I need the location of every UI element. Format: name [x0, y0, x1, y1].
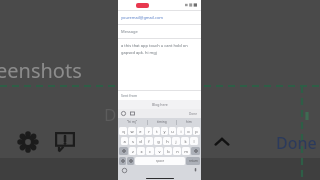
staticText: b [167, 149, 170, 154]
button[interactable]: v [155, 147, 163, 155]
button[interactable]: Numbers [119, 157, 126, 165]
staticText: j [175, 139, 177, 144]
button[interactable]: e [137, 127, 144, 135]
button[interactable]: Done [189, 112, 198, 116]
button[interactable]: m [182, 147, 190, 155]
button[interactable]: More [303, 112, 311, 120]
staticText: u [171, 129, 174, 134]
button[interactable]: Delete [191, 147, 200, 155]
staticText: x [140, 149, 143, 154]
button[interactable]: Message [118, 25, 201, 38]
staticText: n [176, 149, 179, 154]
staticText: y [163, 129, 166, 134]
staticText: Sent from [121, 93, 138, 98]
staticText: h [166, 139, 169, 144]
button[interactable]: h [163, 137, 171, 145]
staticText: Message [121, 29, 138, 34]
staticText: q [122, 129, 125, 134]
staticText: D [104, 103, 117, 126]
staticText: f [148, 139, 150, 144]
staticText: a this that app touch u cant hold on [121, 43, 188, 48]
button[interactable]: f [145, 137, 153, 145]
button[interactable]: g [154, 137, 162, 145]
staticText: w [130, 129, 134, 134]
staticText: k [184, 139, 187, 144]
staticText: t [156, 129, 158, 134]
button[interactable]: w [128, 127, 136, 135]
staticText: r [148, 129, 150, 134]
staticText: e [139, 129, 142, 134]
button[interactable]: q [119, 127, 127, 135]
button[interactable]: Shift [119, 147, 128, 155]
button[interactable]: s [129, 137, 136, 145]
button[interactable]: Settings [13, 127, 43, 157]
button[interactable]: n [173, 147, 181, 155]
staticText: p [195, 129, 198, 134]
staticText: a [123, 139, 126, 144]
staticText: g [157, 139, 160, 144]
button[interactable]: Attach [130, 111, 135, 116]
staticText: m [184, 149, 188, 154]
button[interactable]: Report a problem [50, 127, 80, 157]
staticText: s [132, 139, 134, 144]
staticText: Done [276, 132, 317, 154]
button[interactable]: l [190, 137, 198, 145]
button[interactable]: b [164, 147, 172, 155]
button[interactable]: Format [121, 111, 126, 116]
button[interactable]: Space [135, 157, 185, 165]
button[interactable]: x [137, 147, 145, 155]
button[interactable]: i [177, 127, 184, 135]
button[interactable]: Dictate [194, 168, 197, 174]
button[interactable]: c [146, 147, 154, 155]
staticText: youremail@gmail.com [121, 15, 164, 20]
button[interactable]: t [153, 127, 160, 135]
staticText: gapsod apk. hi mgj [121, 50, 157, 55]
button[interactable]: youremail@gmail.com [118, 11, 201, 24]
button[interactable]: z [129, 147, 136, 155]
staticText: z [132, 149, 134, 154]
staticText: Blog here [152, 102, 168, 107]
button[interactable]: u [169, 127, 176, 135]
button[interactable]: him [186, 120, 192, 124]
staticText: i [180, 129, 182, 134]
staticText: eenshots [0, 57, 82, 84]
staticText: v [158, 149, 161, 154]
button[interactable]: Done [272, 128, 320, 158]
button[interactable]: Expand [208, 128, 236, 156]
staticText: d [139, 139, 142, 144]
staticText: o [187, 129, 190, 134]
button[interactable]: "hi mj" [127, 120, 138, 124]
button[interactable]: a [121, 137, 128, 145]
button[interactable]: p [193, 127, 200, 135]
button[interactable]: o [185, 127, 192, 135]
button[interactable]: k [181, 137, 189, 145]
staticText: return [189, 159, 198, 163]
button[interactable]: d [137, 137, 144, 145]
button[interactable]: Emoji [127, 157, 134, 165]
button[interactable]: timing [157, 120, 167, 124]
button[interactable]: y [161, 127, 168, 135]
staticText: l [193, 139, 195, 144]
button[interactable]: Return [186, 157, 200, 165]
staticText: space [156, 159, 165, 163]
staticText: c [149, 149, 151, 154]
button[interactable]: j [172, 137, 180, 145]
button[interactable]: r [145, 127, 152, 135]
button[interactable]: Globe [122, 168, 127, 173]
